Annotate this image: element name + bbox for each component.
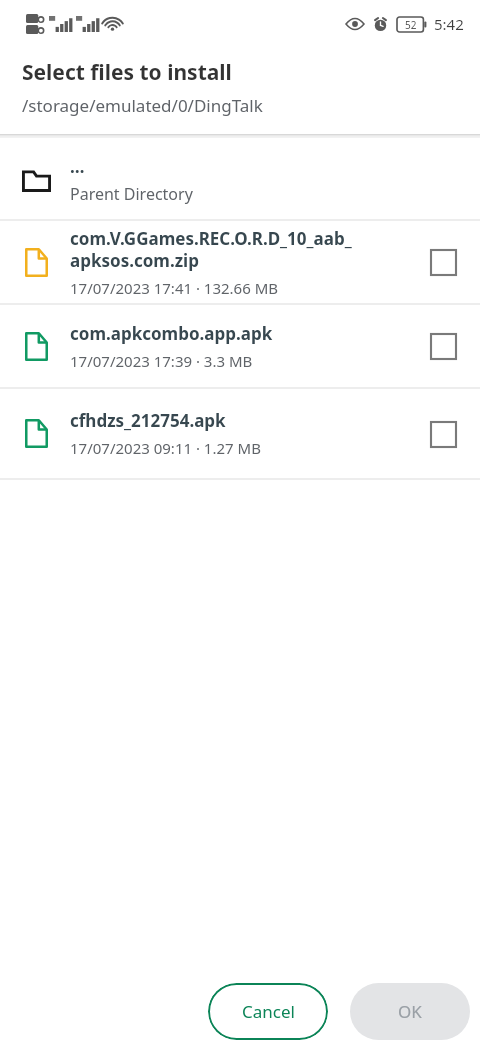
staticText: OK xyxy=(398,1000,422,1023)
staticText: /storage/emulated/0/DingTalk xyxy=(22,94,263,117)
staticText: Select files to install xyxy=(22,58,232,87)
staticText: com.apkcombo.app.apk xyxy=(70,322,273,345)
button[interactable]: cfhdzs_212754.apk xyxy=(0,389,480,478)
button[interactable]: Select file xyxy=(428,419,458,449)
button[interactable]: … xyxy=(0,140,480,219)
button[interactable]: com.V.GGames.REC.O.R.D_10_aab_ apksos.co… xyxy=(0,221,480,303)
staticText: com.V.GGames.REC.O.R.D_10_aab_ apksos.co… xyxy=(70,227,352,272)
staticText: cfhdzs_212754.apk xyxy=(70,409,226,432)
staticText: 17/07/2023 09:11 · 1.27 MB xyxy=(70,438,261,458)
staticText: 5:42 xyxy=(434,14,464,34)
button[interactable]: OK xyxy=(350,983,470,1040)
button[interactable]: Select file xyxy=(428,331,458,361)
staticText: Parent Directory xyxy=(70,183,193,205)
staticText: 17/07/2023 17:41 · 132.66 MB xyxy=(70,278,279,298)
staticText: … xyxy=(70,155,85,178)
staticText: 52 xyxy=(405,18,417,32)
button[interactable]: Select file xyxy=(428,247,458,277)
staticText: 17/07/2023 17:39 · 3.3 MB xyxy=(70,351,253,371)
button[interactable]: com.apkcombo.app.apk xyxy=(0,305,480,387)
staticText: Cancel xyxy=(242,1000,295,1023)
button[interactable]: Cancel xyxy=(208,983,328,1040)
